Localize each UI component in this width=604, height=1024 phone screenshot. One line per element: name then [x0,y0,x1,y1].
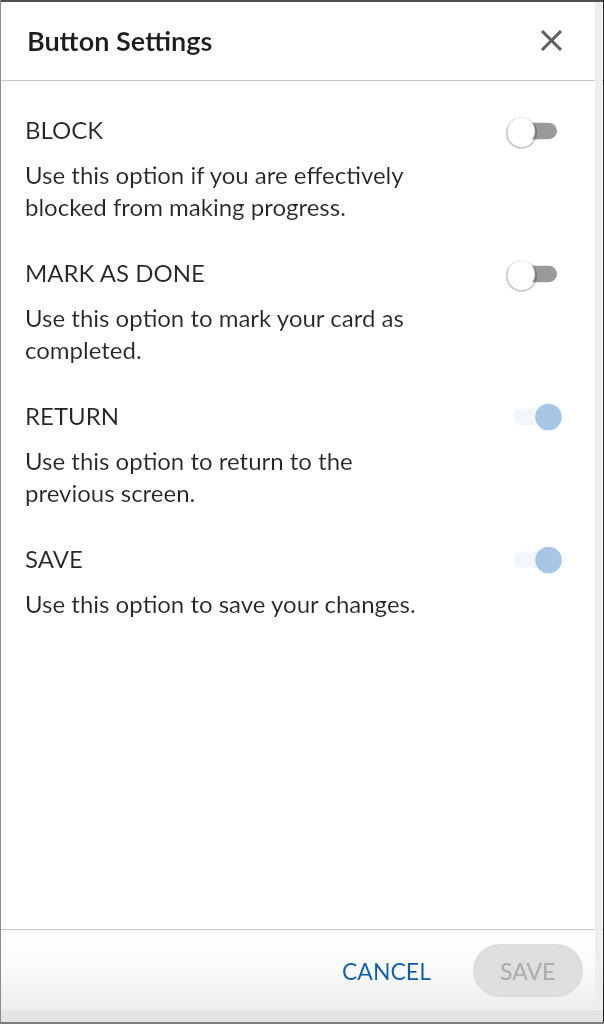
button[interactable]: CANCEL [326,945,447,997]
staticText: Button Settings [27,24,213,56]
staticText: MARK AS DONE [25,258,205,287]
staticText: CANCEL [342,957,431,985]
staticText: RETURN [25,401,120,430]
button[interactable]: Toggle [503,254,572,294]
button[interactable]: Close [529,18,573,62]
staticText: Use this option to return to the previou… [25,444,375,508]
staticText: BLOCK [25,115,104,144]
staticText: Use this option if you are effectively b… [25,158,415,222]
button[interactable]: Toggle [503,111,572,151]
button[interactable]: Toggle [503,397,572,437]
staticText: Use this option to mark your card as com… [25,301,415,365]
button[interactable]: SAVE [473,944,583,997]
button[interactable]: Toggle [503,540,572,580]
staticText: SAVE [500,957,556,985]
staticText: SAVE [25,544,83,573]
staticText: Use this option to save your changes. [25,587,445,619]
